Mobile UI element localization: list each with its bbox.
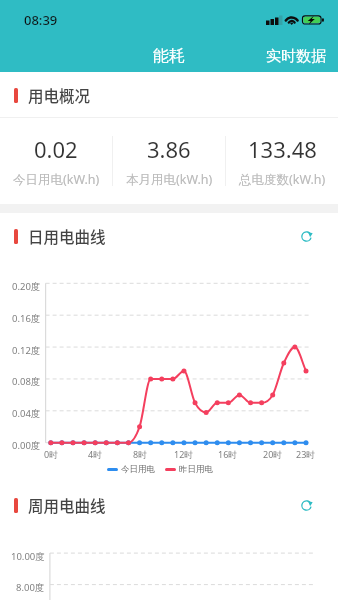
button[interactable]: 133.48 <box>226 118 338 204</box>
button[interactable]: 能耗 <box>110 40 228 72</box>
staticText: 昨日用电 <box>179 464 213 475</box>
staticText: 总电度数(kW.h) <box>239 171 326 188</box>
staticText: 0.16度 <box>12 312 41 325</box>
staticText: 实时数据 <box>266 47 326 66</box>
staticText: 0.08度 <box>12 375 41 388</box>
staticText: 0.00度 <box>12 439 41 452</box>
staticText: 12时 <box>174 448 194 460</box>
staticText: 用电概况 <box>28 84 91 106</box>
staticText: 今日用电 <box>121 464 155 475</box>
staticText: 16时 <box>218 448 238 460</box>
staticText: 133.48 <box>248 134 317 164</box>
button[interactable]: 3.86 <box>113 118 225 204</box>
staticText: 4时 <box>88 448 103 460</box>
staticText: 日用电曲线 <box>28 225 106 247</box>
staticText: 0.12度 <box>12 344 41 357</box>
button[interactable]: Refresh <box>289 488 323 522</box>
staticText: 8时 <box>133 448 148 460</box>
staticText: 0时 <box>44 448 59 460</box>
staticText: 8.00度 <box>16 581 45 594</box>
staticText: 能耗 <box>153 46 185 66</box>
staticText: 0.04度 <box>12 407 41 420</box>
button[interactable]: 实时数据 <box>266 40 326 72</box>
staticText: 本月用电(kW.h) <box>126 171 213 188</box>
button[interactable]: 0.02 <box>0 118 112 204</box>
button[interactable]: Refresh <box>289 219 323 253</box>
staticText: 周用电曲线 <box>28 494 106 516</box>
staticText: 0.20度 <box>12 280 41 293</box>
staticText: 今日用电(kW.h) <box>13 171 100 188</box>
staticText: 23时 <box>296 448 316 460</box>
staticText: 0.02 <box>34 134 78 164</box>
staticText: 20时 <box>263 448 283 460</box>
staticText: 08:39 <box>24 11 58 29</box>
staticText: 3.86 <box>147 134 191 164</box>
staticText: 10.00度 <box>11 550 45 563</box>
